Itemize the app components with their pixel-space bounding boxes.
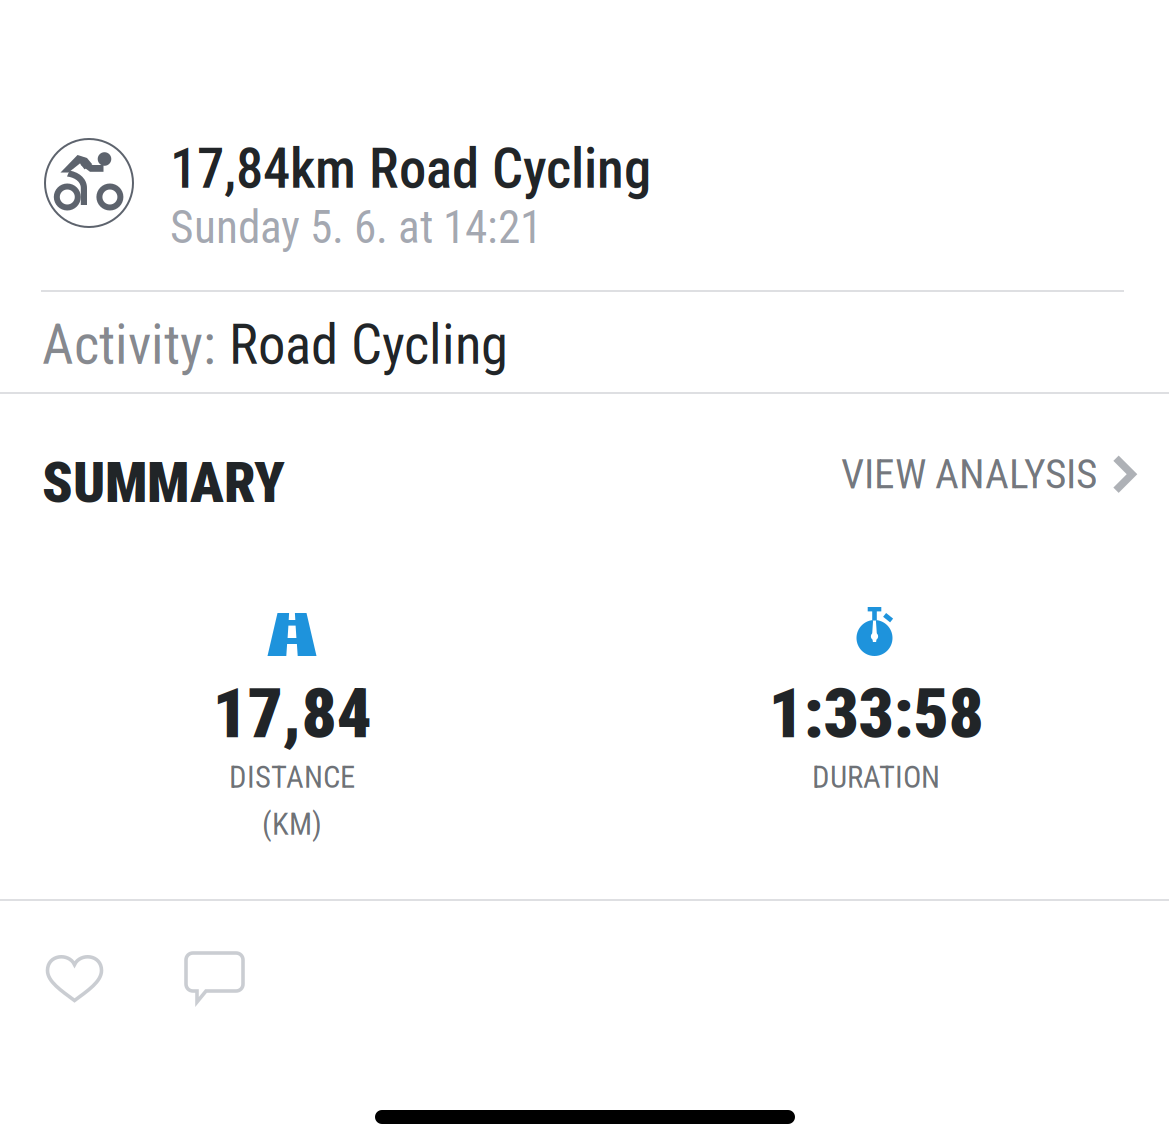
staticText: 1:33:58	[768, 673, 983, 754]
staticText: Road Cycling	[229, 313, 508, 377]
staticText: 17,84km Road Cycling	[170, 137, 651, 201]
button[interactable]: Like	[45, 952, 104, 1002]
button[interactable]: SUMMARY	[42, 450, 285, 516]
button[interactable]: VIEW ANALYSIS	[841, 450, 1136, 498]
staticText: Activity:	[42, 313, 229, 377]
button[interactable]: Comment	[184, 951, 245, 1004]
staticText: DISTANCE	[229, 759, 355, 795]
staticText: SUMMARY	[42, 450, 285, 516]
staticText: (KM)	[262, 806, 322, 842]
staticText: DURATION	[812, 759, 940, 795]
staticText: 17,84	[212, 673, 371, 754]
staticText: Sunday 5. 6. at 14:21	[170, 201, 542, 254]
staticText: VIEW ANALYSIS	[841, 450, 1097, 498]
